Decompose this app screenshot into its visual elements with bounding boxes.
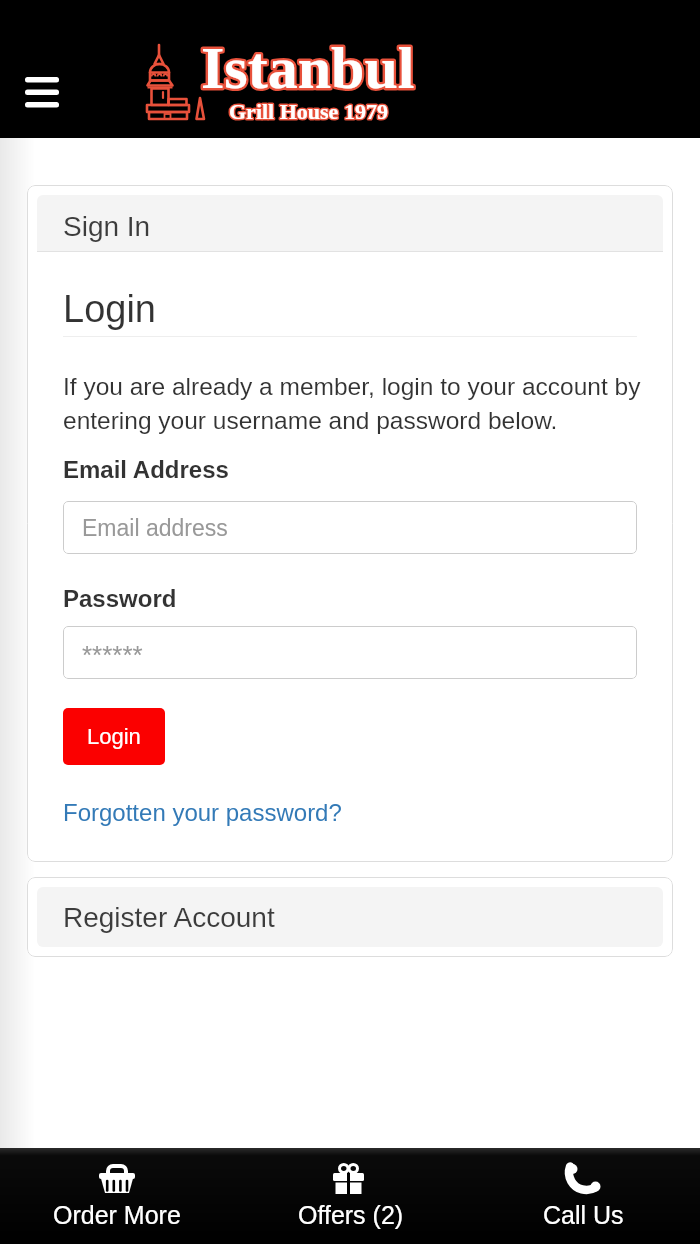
- staticText: Grill House 1979: [229, 99, 388, 123]
- staticText: Order More: [53, 1201, 181, 1229]
- button[interactable]: Register Account: [37, 887, 663, 947]
- button[interactable]: Email address: [63, 501, 637, 554]
- staticText: Offers (2): [298, 1201, 404, 1229]
- staticText: ******: [82, 640, 143, 669]
- staticText: Grill House 1979: [229, 99, 388, 123]
- button[interactable]: Login: [63, 708, 165, 765]
- staticText: Login: [63, 288, 156, 330]
- staticText: Email address: [82, 515, 228, 541]
- staticText: Password: [63, 585, 177, 612]
- button[interactable]: Call Us: [467, 1148, 700, 1244]
- staticText: Sign In: [63, 211, 151, 242]
- staticText: Email Address: [63, 456, 229, 483]
- staticText: Istanbul: [201, 35, 415, 101]
- staticText: If you are already a member, login to yo…: [63, 373, 641, 434]
- button[interactable]: ******: [63, 626, 637, 679]
- staticText: Istanbul: [201, 35, 415, 101]
- staticText: Call Us: [543, 1201, 624, 1229]
- button[interactable]: Order More: [0, 1148, 234, 1244]
- button[interactable]: [22, 73, 62, 111]
- button[interactable]: Forgotten your password?: [63, 799, 342, 826]
- button[interactable]: Offers (2): [234, 1148, 467, 1244]
- staticText: Register Account: [63, 902, 275, 933]
- staticText: Login: [87, 724, 141, 749]
